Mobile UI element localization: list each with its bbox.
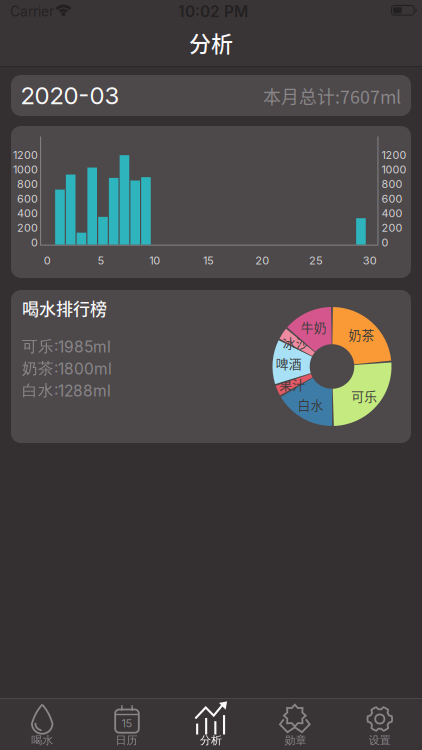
staticText: 600	[381, 192, 402, 205]
staticText: 分析	[189, 27, 233, 58]
staticText: 400	[17, 207, 38, 220]
staticText: 10:02 PM	[178, 2, 248, 21]
staticText: 600	[17, 192, 38, 205]
staticText: 800	[17, 178, 38, 191]
staticText: 15	[203, 254, 214, 267]
staticText: 200	[17, 221, 38, 234]
staticText: 分析	[200, 733, 222, 747]
staticText: 0	[381, 236, 388, 249]
staticText: 白水	[297, 395, 323, 414]
staticText: 牛奶	[301, 318, 327, 336]
staticText: 奶茶	[348, 325, 374, 344]
staticText: 0	[44, 254, 51, 267]
staticText: 5	[97, 254, 104, 267]
staticText: 1200	[381, 148, 406, 162]
button[interactable]: 15	[84, 699, 169, 750]
button[interactable]: 设置	[338, 699, 422, 750]
staticText: 200	[381, 221, 402, 234]
staticText: 15	[122, 716, 133, 730]
staticText: 白水:1288ml	[22, 381, 111, 400]
staticText: 10	[149, 254, 160, 267]
staticText: 勋章	[284, 733, 306, 747]
staticText: 可乐:1985ml	[22, 337, 111, 356]
button[interactable]: 喝水	[0, 699, 84, 750]
staticText: 20	[255, 254, 269, 267]
button[interactable]: 勋章	[253, 699, 338, 750]
staticText: 400	[381, 207, 402, 220]
staticText: 0	[31, 236, 38, 249]
staticText: 喝水排行榜	[22, 296, 107, 320]
staticText: 2020-03	[20, 81, 119, 110]
staticText: 1000	[13, 163, 38, 176]
staticText: 可乐	[351, 386, 377, 405]
staticText: 25	[309, 254, 323, 267]
staticText: 1000	[381, 163, 406, 176]
button[interactable]: 2020-03	[11, 75, 411, 116]
staticText: 日历	[116, 733, 138, 747]
staticText: 1200	[13, 148, 38, 162]
staticText: 啤酒	[276, 354, 302, 372]
staticText: Carrier	[10, 3, 54, 20]
staticText: 冰沙	[283, 333, 309, 352]
staticText: 奶茶:1800ml	[22, 359, 112, 378]
button[interactable]: 分析	[169, 699, 253, 750]
staticText: 本月总计:7607ml	[263, 83, 401, 109]
staticText: 30	[363, 254, 377, 267]
staticText: 果汁	[279, 375, 305, 393]
staticText: 喝水	[31, 733, 53, 747]
staticText: 设置	[369, 733, 391, 747]
staticText: 800	[381, 178, 402, 191]
